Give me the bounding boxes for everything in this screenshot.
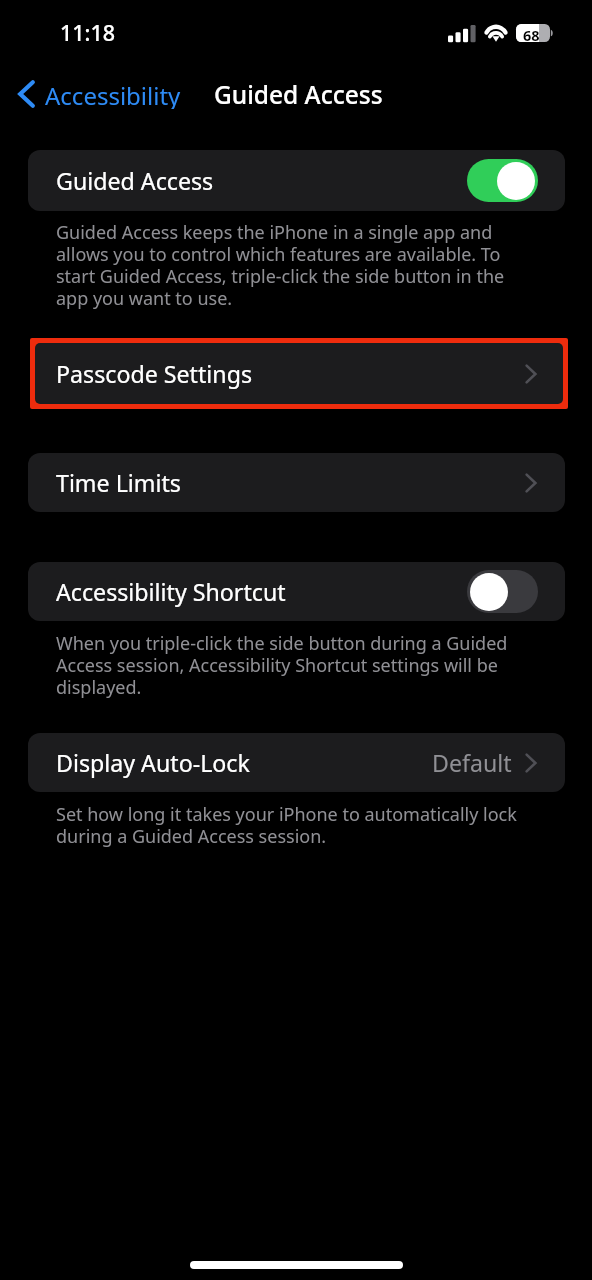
button[interactable]: Toggle on: [467, 159, 538, 202]
staticText: Display Auto-Lock: [56, 747, 250, 779]
staticText: Set how long it takes your iPhone to aut…: [56, 802, 522, 848]
button[interactable]: Toggle off: [467, 570, 538, 613]
staticText: Guided Access: [214, 78, 383, 111]
staticText: Accessibility: [45, 79, 181, 109]
staticText: When you triple-click the side button du…: [56, 631, 522, 699]
staticText: Accessibility Shortcut: [56, 576, 286, 608]
staticText: Time Limits: [56, 467, 181, 499]
button[interactable]: Accessibility Shortcut: [28, 562, 565, 621]
button[interactable]: Passcode Settings: [35, 343, 563, 404]
button[interactable]: Display Auto-Lock: [28, 733, 565, 792]
staticText: Default: [432, 747, 512, 779]
staticText: Guided Access: [56, 165, 214, 197]
staticText: Passcode Settings: [56, 358, 253, 390]
button[interactable]: Accessibility: [18, 79, 181, 109]
staticText: Guided Access keeps the iPhone in a sing…: [56, 220, 522, 310]
staticText: 68: [523, 25, 540, 43]
staticText: 11:18: [60, 18, 116, 47]
button[interactable]: Time Limits: [28, 453, 565, 512]
button[interactable]: Guided Access: [28, 150, 565, 211]
